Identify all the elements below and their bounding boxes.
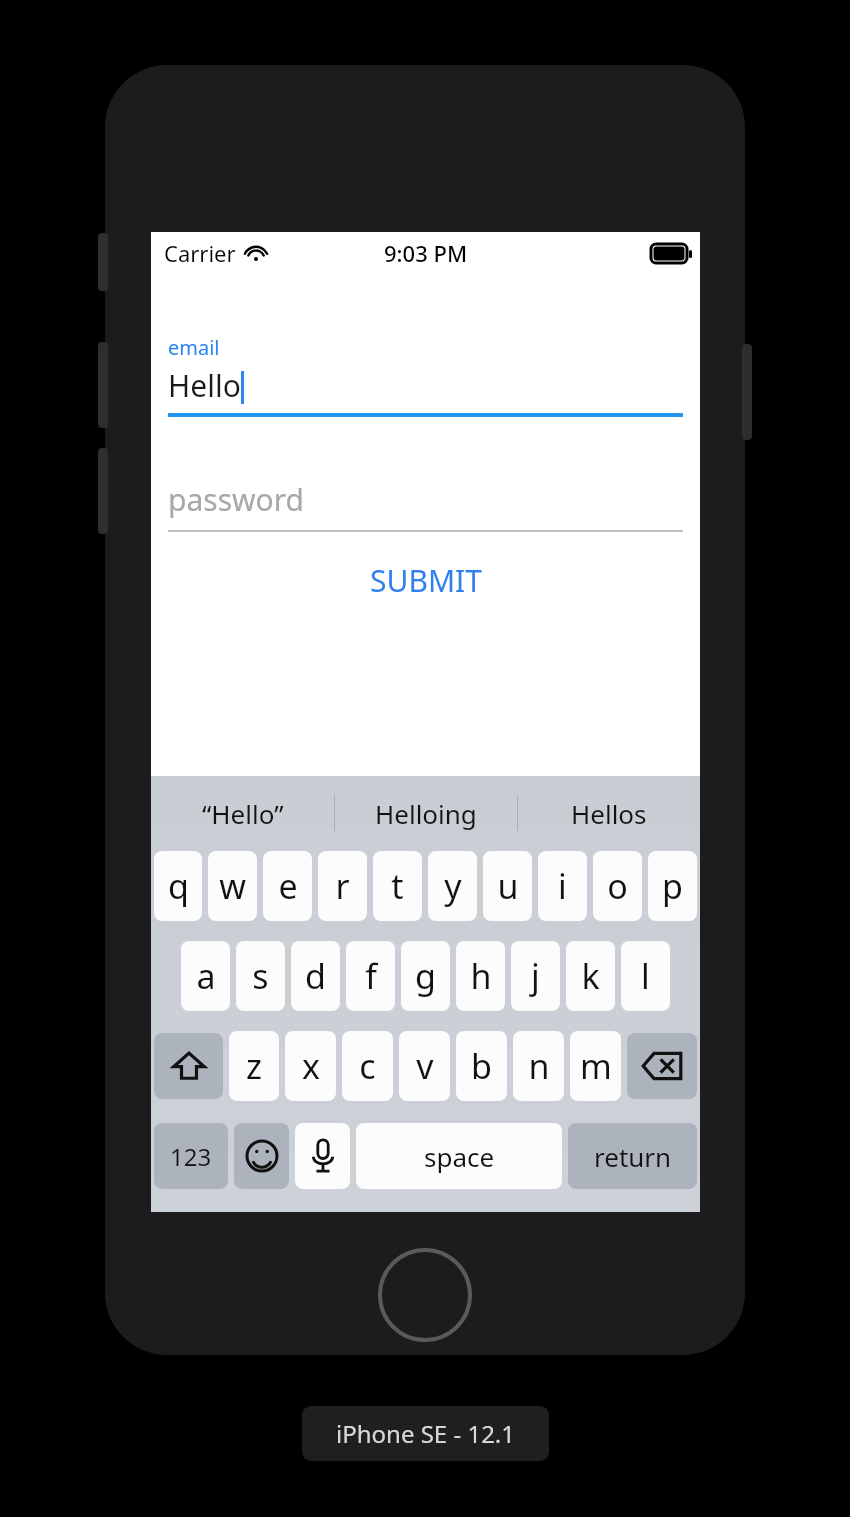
staticText: d (305, 953, 326, 999)
button[interactable]: space (356, 1123, 562, 1189)
staticText: w (219, 863, 246, 909)
staticText: v (416, 1043, 434, 1089)
button[interactable]: m (570, 1031, 621, 1101)
button[interactable]: x (285, 1031, 336, 1101)
button[interactable]: k (566, 941, 615, 1011)
button[interactable]: a (181, 941, 230, 1011)
staticText: y (444, 863, 462, 909)
button[interactable]: Shift (154, 1033, 223, 1099)
button[interactable]: Hellos (518, 776, 700, 850)
button[interactable]: password (168, 479, 683, 532)
button[interactable]: o (593, 851, 642, 921)
button[interactable]: n (513, 1031, 564, 1101)
button[interactable]: u (483, 851, 532, 921)
staticText: m (580, 1043, 612, 1089)
staticText: z (246, 1043, 262, 1089)
staticText: space (424, 1139, 495, 1174)
button[interactable]: e (263, 851, 312, 921)
staticText: Hellos (571, 796, 647, 831)
staticText: g (415, 953, 436, 999)
button[interactable]: Emoji (234, 1123, 289, 1189)
staticText: email (168, 334, 220, 361)
button[interactable]: Delete (627, 1033, 697, 1099)
button[interactable]: return (568, 1123, 697, 1189)
staticText: a (196, 953, 216, 999)
button[interactable]: Helloing (335, 776, 517, 850)
staticText: Carrier (164, 238, 236, 268)
staticText: 123 (170, 1140, 212, 1173)
staticText: “Hello” (202, 796, 284, 831)
button[interactable]: “Hello” (151, 776, 334, 850)
staticText: b (471, 1043, 492, 1089)
button[interactable]: v (399, 1031, 450, 1101)
staticText: SUBMIT (370, 560, 482, 601)
button[interactable]: r (318, 851, 367, 921)
button[interactable]: h (456, 941, 505, 1011)
button[interactable]: 123 (154, 1123, 228, 1189)
staticText: e (278, 863, 298, 909)
button[interactable]: b (456, 1031, 507, 1101)
button[interactable]: l (621, 941, 670, 1011)
button[interactable]: z (229, 1031, 279, 1101)
button[interactable]: i (538, 851, 587, 921)
button[interactable]: g (401, 941, 450, 1011)
staticText: u (497, 863, 519, 909)
staticText: q (168, 863, 189, 909)
staticText: o (607, 863, 628, 909)
staticText: h (470, 953, 492, 999)
staticText: p (662, 863, 683, 909)
staticText: iPhone SE - 12.1 (336, 1417, 516, 1450)
staticText: t (391, 863, 404, 909)
staticText: i (558, 863, 567, 909)
button[interactable]: w (208, 851, 257, 921)
button[interactable]: t (373, 851, 422, 921)
button[interactable]: c (342, 1031, 393, 1101)
staticText: j (531, 953, 540, 999)
button[interactable]: f (346, 941, 395, 1011)
button[interactable]: j (511, 941, 560, 1011)
staticText: 9:03 PM (384, 238, 468, 268)
staticText: r (335, 863, 350, 909)
button[interactable]: d (291, 941, 340, 1011)
staticText: s (252, 953, 269, 999)
button[interactable]: p (648, 851, 697, 921)
button[interactable]: SUBMIT (350, 554, 502, 607)
staticText: f (365, 953, 377, 999)
staticText: Helloing (375, 796, 477, 831)
staticText: password (168, 479, 304, 520)
staticText: k (581, 953, 600, 999)
button[interactable]: q (154, 851, 202, 921)
staticText: return (594, 1139, 672, 1174)
button[interactable]: s (236, 941, 285, 1011)
staticText: c (359, 1043, 376, 1089)
button[interactable]: y (428, 851, 477, 921)
button[interactable]: Dictation (295, 1123, 350, 1189)
staticText: Hello (168, 365, 241, 406)
staticText: n (528, 1043, 550, 1089)
staticText: x (302, 1043, 320, 1089)
staticText: l (641, 953, 650, 999)
